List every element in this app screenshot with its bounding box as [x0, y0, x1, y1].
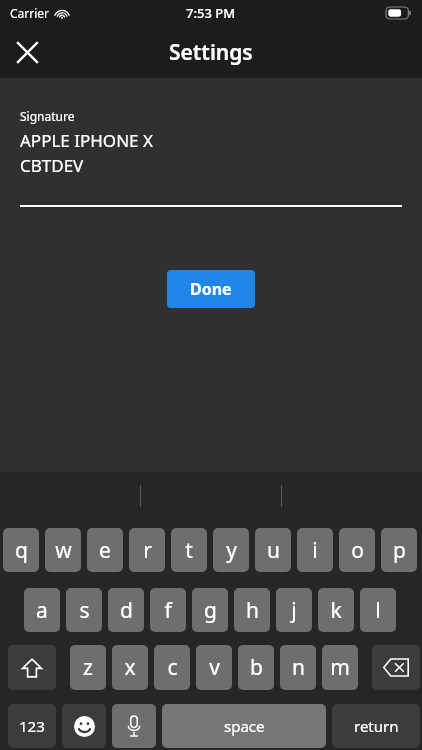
staticText: d: [120, 596, 133, 625]
button[interactable]: i: [297, 528, 333, 572]
button[interactable]: Shift: [8, 645, 56, 690]
staticText: 123: [19, 716, 45, 736]
button[interactable]: Backspace: [372, 645, 420, 690]
staticText: c: [167, 653, 178, 682]
button[interactable]: w: [45, 528, 81, 572]
button[interactable]: Emoji: [62, 704, 106, 748]
staticText: r: [143, 536, 152, 565]
button[interactable]: h: [234, 588, 270, 632]
staticText: e: [99, 536, 111, 565]
button[interactable]: e: [87, 528, 123, 572]
staticText: Settings: [169, 38, 253, 67]
staticText: CBTDEV: [20, 154, 84, 177]
staticText: Signature: [20, 108, 75, 124]
button[interactable]: k: [318, 588, 354, 632]
button[interactable]: l: [360, 588, 396, 632]
staticText: a: [36, 596, 48, 625]
staticText: n: [292, 653, 305, 682]
staticText: w: [55, 536, 72, 565]
button[interactable]: v: [196, 645, 232, 690]
staticText: j: [291, 596, 297, 625]
button[interactable]: return: [332, 704, 420, 748]
button[interactable]: n: [280, 645, 316, 690]
button[interactable]: Done: [167, 270, 255, 308]
staticText: h: [246, 596, 259, 625]
staticText: x: [124, 653, 136, 682]
button[interactable]: r: [129, 528, 165, 572]
button[interactable]: Close: [0, 26, 54, 78]
button[interactable]: u: [255, 528, 291, 572]
staticText: 7:53 PM: [186, 4, 236, 22]
staticText: return: [354, 716, 399, 736]
button[interactable]: c: [154, 645, 190, 690]
staticText: i: [312, 536, 318, 565]
button[interactable]: j: [276, 588, 312, 632]
button[interactable]: m: [322, 645, 358, 690]
staticText: v: [209, 653, 220, 682]
button[interactable]: p: [381, 528, 417, 572]
staticText: y: [226, 536, 237, 565]
staticText: b: [250, 653, 263, 682]
button[interactable]: x: [112, 645, 148, 690]
button[interactable]: t: [171, 528, 207, 572]
staticText: k: [330, 596, 342, 625]
button[interactable]: y: [213, 528, 249, 572]
staticText: f: [164, 596, 172, 625]
button[interactable]: space: [162, 704, 326, 748]
staticText: m: [330, 653, 350, 682]
button[interactable]: d: [108, 588, 144, 632]
staticText: s: [79, 596, 90, 625]
button[interactable]: z: [70, 645, 106, 690]
button[interactable]: g: [192, 588, 228, 632]
staticText: p: [393, 536, 406, 565]
staticText: l: [375, 596, 381, 625]
button[interactable]: 123: [8, 704, 56, 748]
staticText: q: [15, 536, 28, 565]
staticText: Carrier: [10, 5, 50, 21]
staticText: o: [351, 536, 364, 565]
staticText: APPLE IPHONE X: [20, 129, 153, 152]
staticText: Done: [190, 278, 232, 300]
staticText: g: [204, 596, 217, 625]
staticText: z: [83, 653, 93, 682]
staticText: space: [224, 716, 265, 736]
staticText: u: [267, 536, 280, 565]
button[interactable]: b: [238, 645, 274, 690]
button[interactable]: o: [339, 528, 375, 572]
button[interactable]: s: [66, 588, 102, 632]
button[interactable]: Dictation: [112, 704, 156, 748]
button[interactable]: a: [24, 588, 60, 632]
staticText: t: [185, 536, 193, 565]
button[interactable]: f: [150, 588, 186, 632]
button[interactable]: q: [3, 528, 39, 572]
